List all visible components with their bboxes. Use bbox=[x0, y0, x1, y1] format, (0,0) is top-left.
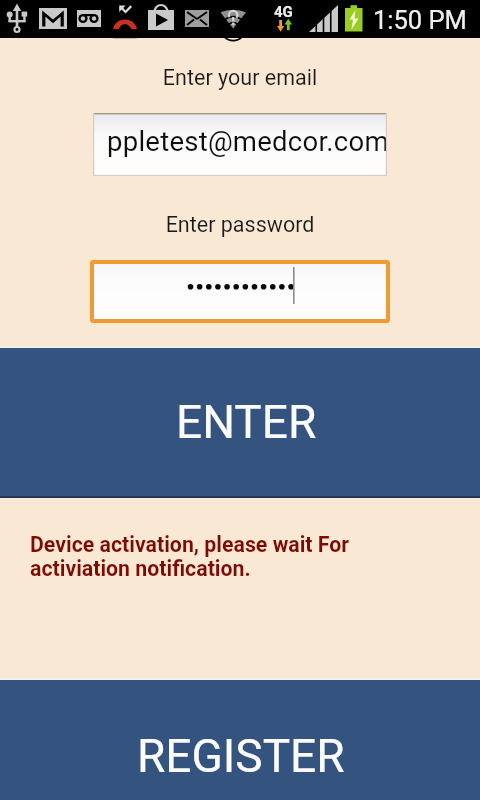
staticText: Enter your email bbox=[0, 65, 480, 90]
staticText: 1:50 PM bbox=[373, 5, 467, 35]
staticText: ppletest@medcor.com bbox=[107, 125, 387, 157]
button[interactable]: ppletest@medcor.com bbox=[93, 113, 387, 176]
staticText: Device activation, please wait For activ… bbox=[30, 532, 356, 582]
staticText: Enter password bbox=[0, 212, 480, 237]
staticText: ENTER bbox=[176, 395, 317, 449]
button[interactable]: ENTER bbox=[0, 348, 480, 496]
button[interactable]: REGISTER bbox=[0, 680, 480, 800]
staticText: 4G bbox=[274, 3, 293, 21]
staticText: REGISTER bbox=[137, 729, 345, 783]
button[interactable] bbox=[90, 260, 390, 323]
